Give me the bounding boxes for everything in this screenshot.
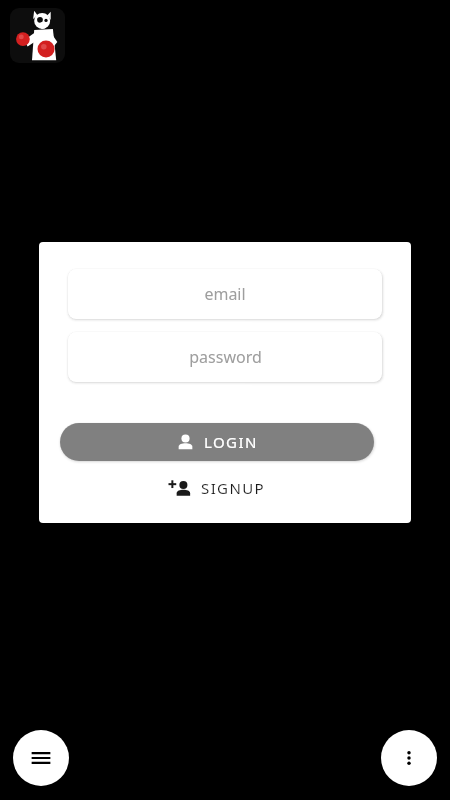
button[interactable]: SIGNUP (159, 470, 276, 506)
staticText: email (204, 283, 246, 305)
staticText: password (189, 346, 262, 368)
staticText: SIGNUP (201, 478, 266, 498)
button[interactable]: password (68, 332, 382, 382)
button[interactable]: email (68, 269, 382, 319)
staticText: LOGIN (204, 432, 258, 452)
button[interactable]: LOGIN (60, 423, 374, 461)
button[interactable]: App logo (10, 8, 65, 63)
button[interactable]: Menu (13, 730, 69, 786)
button[interactable]: More options (381, 730, 437, 786)
